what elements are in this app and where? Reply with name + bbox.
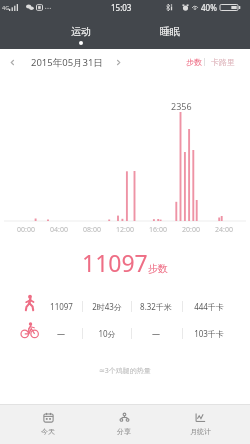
staticText: 步数: [186, 57, 202, 67]
staticText: 分享: [117, 427, 131, 436]
staticText: 月统计: [190, 427, 211, 436]
staticText: 04:00: [50, 225, 68, 235]
staticText: 8.32千米: [140, 301, 172, 312]
staticText: —: [57, 328, 65, 339]
button[interactable]: 分享: [88, 405, 160, 444]
staticText: 24:00: [215, 225, 233, 235]
staticText: 40%: [201, 2, 217, 13]
button[interactable]: Next day: [109, 53, 127, 71]
staticText: ≈3个鸡腿的热量: [99, 366, 151, 376]
staticText: 11097: [82, 247, 148, 278]
staticText: 2时43分: [92, 301, 122, 312]
button[interactable]: 睡眠: [125, 15, 214, 49]
staticText: 步数: [148, 262, 168, 275]
staticText: 11097: [50, 301, 73, 312]
button[interactable]: Previous day: [3, 53, 21, 71]
staticText: 444千卡: [194, 301, 224, 312]
staticText: 00:00: [17, 225, 35, 235]
button[interactable]: 月统计: [164, 405, 236, 444]
staticText: 卡路里: [211, 57, 235, 67]
staticText: 15:03: [111, 2, 132, 13]
button[interactable]: 步数: [182, 53, 206, 71]
staticText: 今天: [41, 427, 55, 436]
staticText: 20:00: [182, 225, 200, 235]
staticText: 4G: [2, 4, 10, 11]
button[interactable]: 今天: [12, 405, 84, 444]
staticText: 2356: [171, 100, 192, 112]
staticText: 08:00: [83, 225, 101, 235]
staticText: 10分: [98, 328, 116, 339]
staticText: 12:00: [116, 225, 134, 235]
staticText: 睡眠: [160, 25, 180, 38]
button[interactable]: 运动: [36, 15, 125, 49]
staticText: 103千卡: [194, 328, 224, 339]
staticText: 运动: [71, 25, 91, 38]
staticText: —: [152, 328, 160, 339]
button[interactable]: 卡路里: [207, 53, 239, 71]
staticText: 16:00: [149, 225, 167, 235]
staticText: 2015年05月31日: [31, 56, 103, 69]
